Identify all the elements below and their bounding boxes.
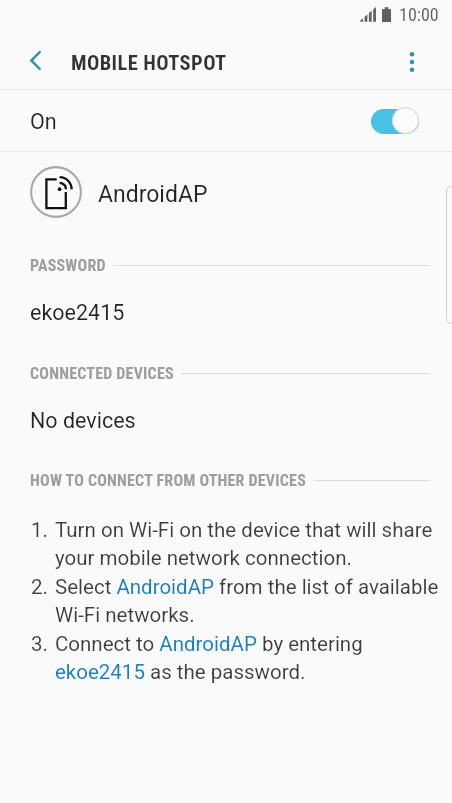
staticText: On — [30, 109, 57, 134]
staticText: 1. — [31, 518, 55, 543]
staticText: MOBILE HOTSPOT — [71, 51, 227, 75]
button[interactable]: Navigate up — [0, 34, 68, 89]
staticText: Turn on Wi-Fi on the device that will sh… — [55, 518, 439, 571]
staticText: AndroidAP — [98, 181, 208, 208]
button[interactable]: More options — [388, 34, 436, 89]
staticText: 10:00 — [399, 4, 439, 25]
staticText: ekoe2415 — [30, 300, 125, 325]
staticText: CONNECTED DEVICES — [30, 364, 174, 383]
staticText: Select AndroidAP from the list of availa… — [55, 575, 439, 628]
staticText: Connect to AndroidAP by entering ekoe241… — [55, 632, 439, 685]
staticText: No devices — [30, 408, 136, 433]
staticText: 3. — [31, 632, 55, 657]
staticText: 2. — [31, 575, 55, 600]
staticText: PASSWORD — [30, 256, 106, 275]
staticText: HOW TO CONNECT FROM OTHER DEVICES — [30, 471, 307, 490]
button[interactable]: On — [0, 90, 452, 151]
